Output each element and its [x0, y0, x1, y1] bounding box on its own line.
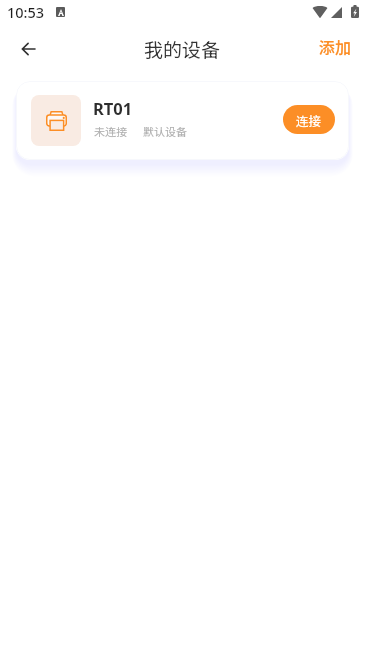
staticText: 添加 — [319, 35, 352, 58]
staticText: 10:53 — [7, 2, 45, 22]
button[interactable]: 连接 — [283, 105, 335, 134]
staticText: 我的设备 — [144, 35, 221, 63]
staticText: 未连接 — [94, 123, 127, 139]
staticText: RT01 — [93, 97, 133, 119]
staticText: 默认设备 — [143, 123, 187, 139]
button[interactable]: 添加 — [304, 27, 365, 66]
button[interactable]: RT01 — [16, 81, 349, 160]
staticText: 连接 — [296, 111, 322, 129]
button[interactable]: Back — [8, 29, 48, 69]
